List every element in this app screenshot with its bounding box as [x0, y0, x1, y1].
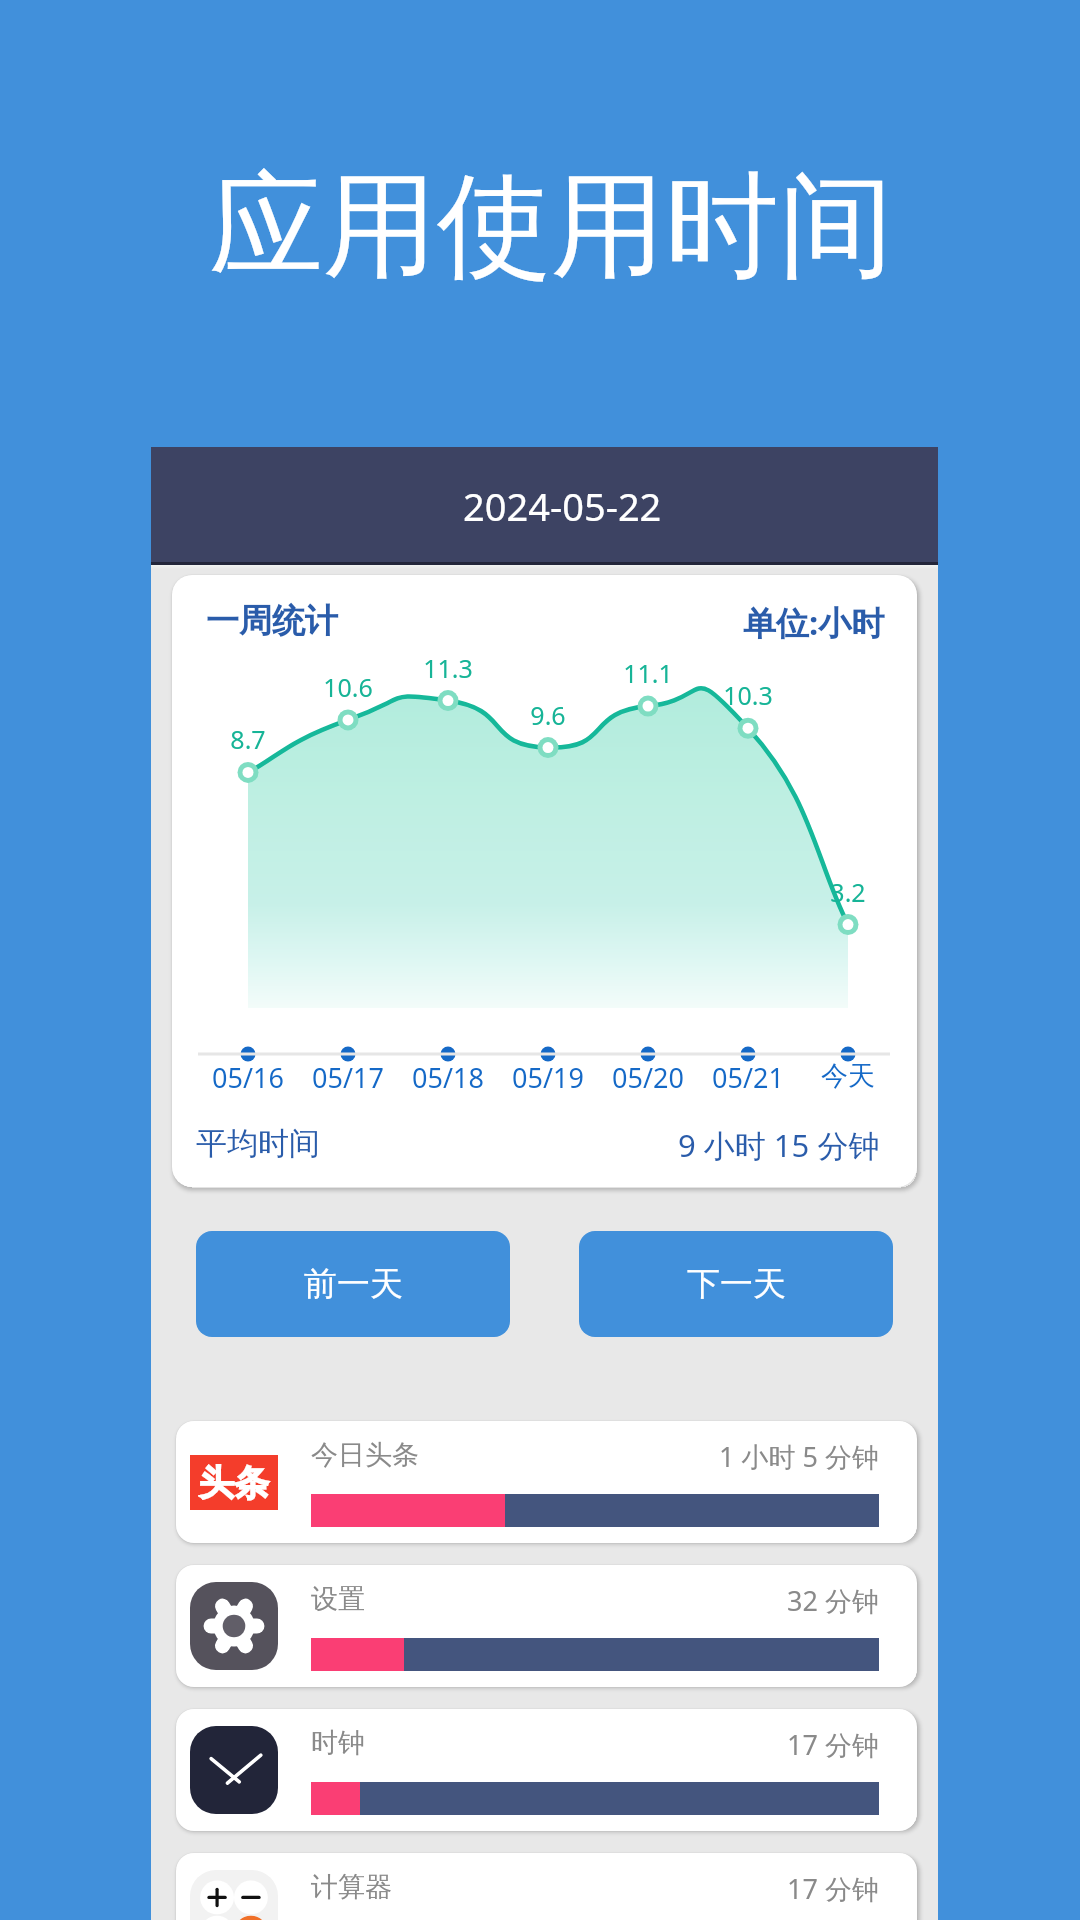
staticText: 05/18 — [412, 1059, 484, 1096]
button[interactable]: 2024-05-22 — [151, 447, 938, 565]
button[interactable]: 计算器 — [176, 1853, 917, 1920]
staticText: 平均时间 — [196, 1124, 320, 1163]
staticText: 05/17 — [312, 1059, 384, 1096]
staticText: 时钟 — [311, 1726, 365, 1760]
staticText: 9 小时 15 分钟 — [678, 1124, 880, 1166]
staticText: 05/19 — [512, 1059, 584, 1096]
staticText: 05/21 — [712, 1059, 784, 1096]
staticText: 9.6 — [530, 698, 566, 732]
button[interactable]: 今日头条 — [176, 1421, 917, 1543]
button[interactable]: 下一天 — [579, 1231, 893, 1337]
staticText: 11.3 — [423, 651, 473, 685]
staticText: 32 分钟 — [787, 1582, 879, 1619]
staticText: 8.7 — [230, 722, 266, 756]
button[interactable]: 设置 — [176, 1565, 917, 1687]
other: 设置 — [190, 1582, 278, 1670]
staticText: 一周统计 — [206, 600, 338, 642]
staticText: 头条 — [199, 1461, 269, 1505]
staticText: 2024-05-22 — [463, 480, 662, 532]
other: 计算器 — [190, 1870, 278, 1920]
staticText: 今日头条 — [311, 1438, 419, 1472]
staticText: 下一天 — [687, 1263, 786, 1305]
staticText: 10.6 — [323, 670, 373, 704]
staticText: 17 分钟 — [787, 1726, 879, 1763]
staticText: 05/16 — [212, 1059, 284, 1096]
staticText: 3.2 — [830, 875, 866, 909]
staticText: 今天 — [821, 1059, 875, 1093]
staticText: 单位:小时 — [743, 600, 885, 645]
staticText: 11.1 — [623, 656, 673, 690]
staticText: 计算器 — [311, 1870, 392, 1904]
staticText: 应用使用时间 — [209, 155, 893, 299]
button[interactable]: 时钟 — [176, 1709, 917, 1831]
staticText: 05/20 — [612, 1059, 684, 1096]
button[interactable]: 前一天 — [196, 1231, 510, 1337]
staticText: 前一天 — [304, 1263, 403, 1305]
other: 时钟 — [190, 1726, 278, 1814]
staticText: 10.3 — [723, 678, 773, 712]
other: 今日头条 — [190, 1438, 278, 1526]
staticText: 1 小时 5 分钟 — [719, 1438, 879, 1475]
staticText: 设置 — [311, 1582, 365, 1616]
staticText: 17 分钟 — [787, 1870, 879, 1907]
